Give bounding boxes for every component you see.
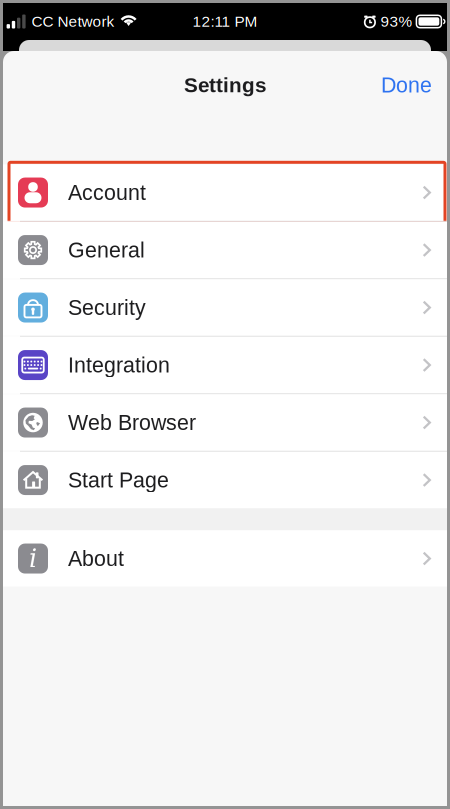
staticText: 93%	[380, 13, 412, 30]
staticText: Web Browser	[68, 411, 196, 434]
staticText: CC Network	[32, 13, 115, 30]
button[interactable]: Integration	[3, 337, 447, 393]
staticText: Account	[68, 181, 146, 204]
staticText: General	[68, 238, 145, 262]
button[interactable]: Start Page	[3, 452, 447, 508]
button[interactable]: Account	[3, 164, 447, 221]
staticText: i	[29, 544, 37, 573]
button[interactable]: i	[3, 530, 447, 587]
staticText: Start Page	[68, 468, 169, 492]
staticText: About	[68, 547, 124, 570]
button[interactable]: Done	[366, 62, 447, 108]
staticText: Security	[68, 296, 146, 319]
button[interactable]: Security	[3, 279, 447, 336]
staticText: Settings	[184, 73, 266, 97]
staticText: Integration	[68, 353, 170, 377]
staticText: Done	[381, 73, 432, 97]
staticText: 12:11 PM	[192, 13, 257, 30]
button[interactable]: Web Browser	[3, 394, 447, 451]
button[interactable]: General	[3, 222, 447, 278]
